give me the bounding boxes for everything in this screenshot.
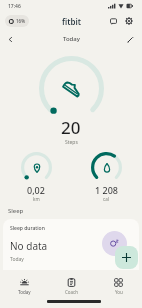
staticText: 1 208 — [95, 184, 118, 196]
staticText: fitbit — [62, 16, 81, 27]
staticText: No data — [10, 239, 48, 253]
staticText: Sleep — [8, 207, 24, 215]
button[interactable] — [107, 15, 119, 27]
button[interactable] — [115, 246, 138, 269]
staticText: Today — [10, 256, 24, 263]
staticText: 17:46 — [8, 3, 21, 10]
staticText: Today — [63, 35, 80, 43]
staticText: Steps — [65, 139, 78, 146]
staticText: 20 — [61, 116, 81, 139]
button[interactable] — [39, 56, 104, 121]
staticText: km — [33, 196, 40, 202]
staticText: You — [115, 289, 123, 295]
button[interactable]: 16% — [5, 15, 29, 27]
button[interactable] — [4, 33, 16, 45]
button[interactable] — [124, 33, 136, 45]
staticText: cal — [103, 196, 109, 202]
staticText: Coach — [65, 289, 79, 295]
staticText: Sleep duration — [10, 225, 45, 232]
button[interactable]: Sleep duration — [3, 219, 139, 279]
staticText: Today — [18, 289, 31, 295]
button[interactable]: 0,02 — [16, 152, 56, 202]
button[interactable]: You — [95, 275, 142, 297]
staticText: 16% — [16, 18, 25, 24]
button[interactable]: 1 208 — [86, 152, 126, 202]
button[interactable]: Today — [0, 275, 48, 297]
staticText: 0,02 — [27, 184, 45, 196]
button[interactable]: Coach — [48, 275, 95, 297]
button[interactable] — [123, 15, 135, 27]
